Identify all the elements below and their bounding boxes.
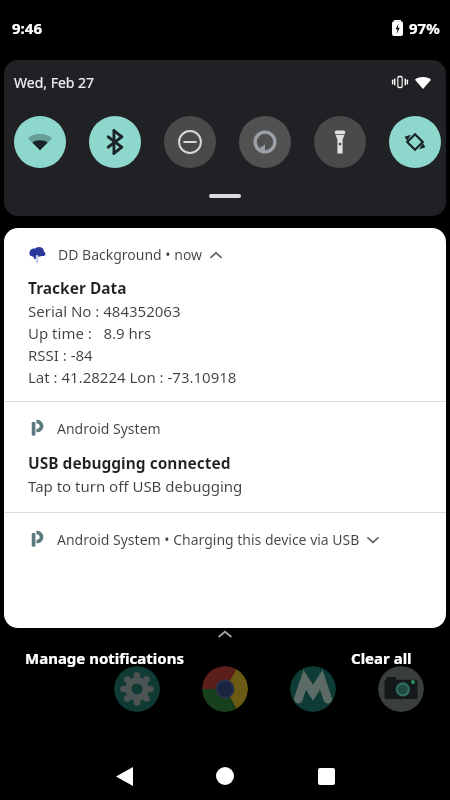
button[interactable]: DD Background • now bbox=[4, 228, 446, 401]
staticText: Tap to turn off USB debugging bbox=[28, 476, 243, 496]
staticText: Up time : 8.9 hrs bbox=[28, 323, 152, 343]
button[interactable]: Android System • Charging this device vi… bbox=[4, 513, 446, 566]
button[interactable]: Chrome bbox=[202, 666, 248, 712]
staticText: Android System • Charging this device vi… bbox=[57, 530, 360, 549]
button[interactable]: Android System bbox=[4, 402, 446, 512]
staticText: Clear all bbox=[351, 648, 412, 668]
button[interactable]: Back bbox=[96, 752, 152, 800]
staticText: 97% bbox=[409, 18, 440, 38]
button[interactable]: Clear all bbox=[340, 643, 423, 673]
button[interactable]: Wi-Fi bbox=[14, 116, 66, 168]
button[interactable]: Bluetooth bbox=[89, 116, 141, 168]
button[interactable]: Do not disturb bbox=[164, 116, 216, 168]
staticText: 9:46 bbox=[12, 18, 42, 38]
button[interactable]: Recents bbox=[298, 752, 354, 800]
button[interactable]: Manage notifications bbox=[14, 643, 195, 673]
staticText: Tracker Data bbox=[28, 277, 127, 298]
button[interactable]: Auto rotate bbox=[389, 116, 441, 168]
other: Collapse bbox=[218, 630, 232, 638]
staticText: RSSI : -84 bbox=[28, 345, 93, 365]
button[interactable]: Camera bbox=[378, 666, 424, 712]
staticText: Serial No : 484352063 bbox=[28, 301, 181, 321]
staticText: Android System bbox=[57, 419, 161, 438]
staticText: USB debugging connected bbox=[28, 452, 231, 473]
staticText: DD Background • now bbox=[58, 245, 203, 264]
button[interactable]: Home bbox=[197, 752, 253, 800]
button[interactable]: Flashlight bbox=[314, 116, 366, 168]
staticText: Wed, Feb 27 bbox=[14, 73, 95, 92]
staticText: Manage notifications bbox=[25, 648, 184, 668]
button[interactable]: Moto bbox=[290, 666, 336, 712]
button[interactable]: Settings bbox=[114, 666, 160, 712]
button[interactable]: Assistant bbox=[239, 116, 291, 168]
staticText: Lat : 41.28224 Lon : -73.10918 bbox=[28, 367, 237, 387]
